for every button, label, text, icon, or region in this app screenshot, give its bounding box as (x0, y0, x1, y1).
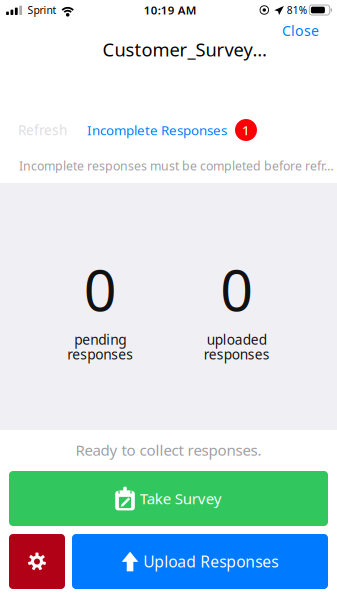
staticText: Refresh (18, 121, 67, 139)
staticText: Ready to collect responses. (75, 440, 261, 460)
button[interactable]: Incomplete Responses (79, 116, 265, 144)
staticText: 10:19 AM (144, 2, 197, 18)
staticText: Incomplete Responses (87, 121, 227, 139)
staticText: uploaded (207, 330, 267, 349)
staticText: responses (67, 345, 133, 363)
button[interactable]: Refresh (10, 115, 75, 145)
staticText: 0 (84, 250, 117, 328)
staticText: Customer_Survey… (102, 37, 266, 62)
staticText: Close (282, 21, 319, 40)
staticText: Sprint (27, 3, 56, 17)
staticText: 1 (242, 121, 250, 139)
staticText: Incomplete responses must be completed b… (19, 157, 334, 174)
button[interactable]: Upload Responses (72, 534, 328, 589)
staticText: Upload Responses (143, 551, 278, 572)
staticText: responses (204, 345, 270, 363)
button[interactable]: Close (273, 18, 337, 43)
staticText: 81% (287, 3, 307, 17)
button[interactable]: Take Survey (9, 471, 328, 526)
staticText: pending (74, 330, 126, 349)
button[interactable]: Settings (9, 534, 65, 589)
staticText: 0 (220, 250, 253, 328)
staticText: Take Survey (140, 488, 222, 509)
